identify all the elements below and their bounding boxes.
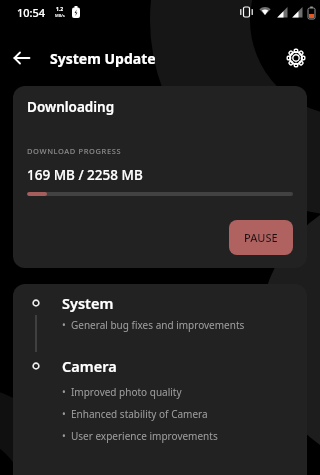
staticText: PAUSE: [244, 230, 278, 245]
staticText: Camera: [62, 356, 117, 376]
staticText: • Enhanced stability of Camera: [62, 407, 208, 421]
staticText: Downloading: [27, 98, 115, 116]
button[interactable]: [6, 42, 38, 74]
button[interactable]: System: [32, 293, 114, 313]
staticText: MB/s: [55, 13, 65, 18]
button[interactable]: Camera: [32, 356, 117, 376]
staticText: 169 MB / 2258 MB: [27, 166, 143, 184]
button[interactable]: [280, 42, 312, 74]
staticText: 1.2: [56, 6, 64, 13]
staticText: System: [62, 293, 114, 313]
staticText: DOWNLOAD PROGRESS: [27, 146, 122, 156]
staticText: • User experience improvements: [62, 429, 218, 443]
button[interactable]: PAUSE: [229, 220, 293, 255]
staticText: • Improved photo quality: [62, 385, 182, 399]
staticText: System Update: [50, 49, 156, 68]
staticText: • General bug fixes and improvements: [62, 318, 245, 332]
staticText: 10:54: [17, 5, 46, 20]
